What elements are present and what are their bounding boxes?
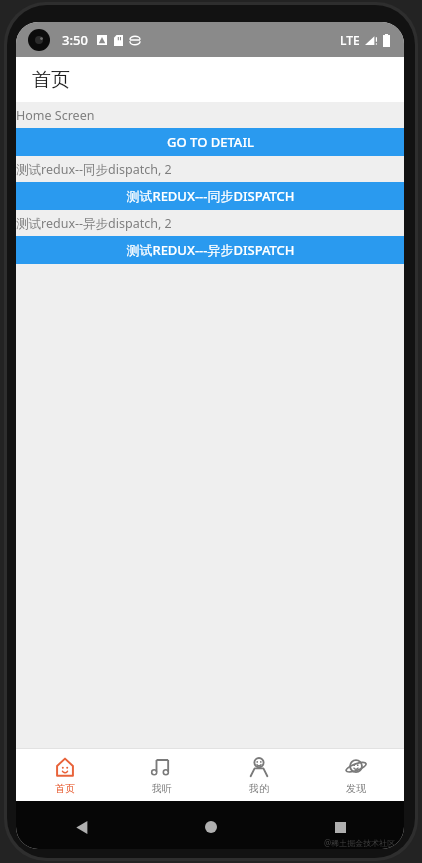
staticText: 3:50: [62, 31, 88, 49]
staticText: Home Screen: [16, 107, 95, 124]
button[interactable]: Back: [67, 813, 95, 841]
staticText: 首页: [55, 782, 75, 795]
button[interactable]: Home Screen: [16, 102, 404, 128]
button[interactable]: 我听: [113, 749, 210, 801]
button[interactable]: 测试REDUX---同步DISPATCH: [16, 182, 404, 210]
staticText: 首页: [32, 68, 70, 92]
button[interactable]: GO TO DETAIL: [16, 128, 404, 156]
button[interactable]: 测试REDUX---异步DISPATCH: [16, 236, 404, 264]
button[interactable]: 发现: [307, 749, 404, 801]
staticText: 测试redux--同步dispatch, 2: [16, 161, 172, 178]
button[interactable]: 首页: [16, 749, 113, 801]
button[interactable]: 我的: [210, 749, 307, 801]
button[interactable]: 测试redux--同步dispatch, 2: [16, 156, 404, 182]
staticText: @稀土掘金技术社区: [324, 837, 396, 848]
staticText: 我的: [249, 782, 269, 795]
staticText: 测试redux--异步dispatch, 2: [16, 215, 172, 232]
staticText: 测试REDUX---异步DISPATCH: [126, 241, 295, 259]
staticText: LTE: [340, 32, 360, 48]
staticText: 我听: [152, 782, 172, 795]
staticText: GO TO DETAIL: [167, 133, 254, 151]
staticText: 发现: [346, 782, 366, 795]
button[interactable]: Home: [197, 813, 225, 841]
button[interactable]: 测试redux--异步dispatch, 2: [16, 210, 404, 236]
staticText: 测试REDUX---同步DISPATCH: [126, 187, 295, 205]
button[interactable]: Recent apps: [326, 813, 354, 841]
